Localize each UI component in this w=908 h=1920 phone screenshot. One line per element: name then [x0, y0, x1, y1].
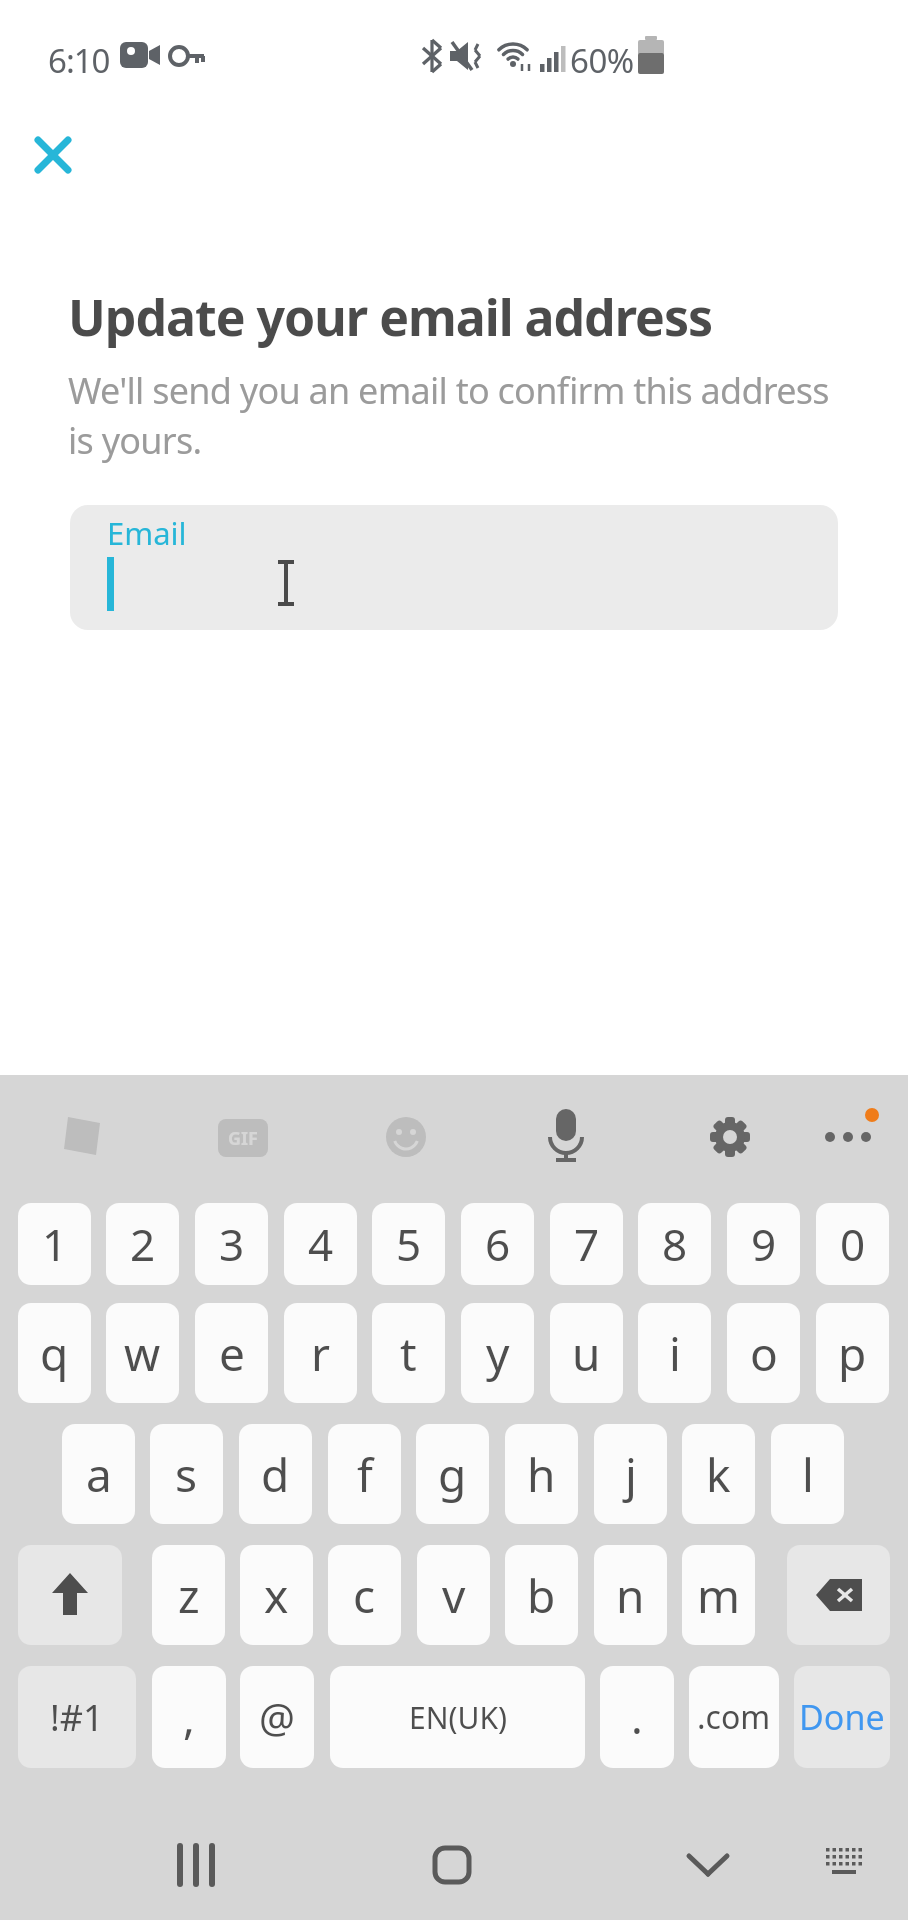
button[interactable]: d	[239, 1424, 312, 1524]
staticText: n	[616, 1564, 645, 1627]
button[interactable]: y	[461, 1303, 534, 1403]
staticText: h	[527, 1443, 556, 1506]
staticText: 4	[308, 1214, 334, 1274]
button[interactable]: 0	[816, 1203, 889, 1285]
button[interactable]: l	[771, 1424, 844, 1524]
staticText: j	[625, 1443, 637, 1506]
button[interactable]: c	[328, 1545, 401, 1645]
staticText: 8	[662, 1214, 688, 1274]
staticText: d	[261, 1443, 290, 1506]
staticText: q	[40, 1322, 69, 1385]
staticText: 1	[42, 1214, 68, 1274]
button[interactable]	[787, 1545, 890, 1645]
button[interactable]: i	[638, 1303, 711, 1403]
button[interactable]: h	[505, 1424, 578, 1524]
staticText: c	[353, 1564, 376, 1627]
button[interactable]	[22, 124, 84, 186]
button[interactable]: m	[682, 1545, 755, 1645]
button[interactable]: ,	[152, 1666, 226, 1768]
button[interactable]: Done	[794, 1666, 890, 1768]
button[interactable]: .	[600, 1666, 674, 1768]
staticText: Update your email address	[68, 283, 713, 351]
button[interactable]: t	[372, 1303, 445, 1403]
button[interactable]: w	[106, 1303, 179, 1403]
button[interactable]: b	[505, 1545, 578, 1645]
staticText: v	[442, 1564, 466, 1627]
button[interactable]	[812, 1831, 876, 1895]
button[interactable]: 2	[106, 1203, 179, 1285]
staticText: 6:10	[48, 38, 110, 83]
staticText: o	[750, 1322, 778, 1385]
staticText: k	[706, 1443, 731, 1506]
staticText: Done	[799, 1694, 885, 1740]
staticText: e	[219, 1322, 245, 1385]
button[interactable]: a	[62, 1424, 135, 1524]
staticText: 6	[485, 1214, 511, 1274]
button[interactable]: s	[150, 1424, 223, 1524]
button[interactable]: 3	[195, 1203, 268, 1285]
staticText: t	[400, 1322, 417, 1385]
staticText: 5	[396, 1214, 422, 1274]
staticText: Email	[107, 512, 187, 554]
staticText: 3	[219, 1214, 245, 1274]
button[interactable]: 1	[18, 1203, 91, 1285]
staticText: r	[311, 1322, 330, 1385]
staticText: We'll send you an email to confirm this …	[68, 366, 829, 465]
button[interactable]: j	[594, 1424, 667, 1524]
button[interactable]: v	[417, 1545, 490, 1645]
staticText: EN(UK)	[409, 1697, 507, 1738]
button[interactable]: k	[682, 1424, 755, 1524]
button[interactable]: g	[416, 1424, 489, 1524]
button[interactable]	[672, 1829, 744, 1901]
staticText: ,	[183, 1687, 195, 1747]
staticText: 2	[130, 1214, 156, 1274]
staticText: m	[697, 1564, 741, 1627]
staticText: 9	[751, 1214, 777, 1274]
button[interactable]: f	[328, 1424, 401, 1524]
staticText: i	[669, 1322, 681, 1385]
button[interactable]	[160, 1829, 232, 1901]
button[interactable]: !#1	[18, 1666, 136, 1768]
staticText: .com	[697, 1695, 771, 1739]
staticText: s	[175, 1443, 198, 1506]
button[interactable]: r	[284, 1303, 357, 1403]
staticText: b	[527, 1564, 556, 1627]
staticText: f	[357, 1443, 373, 1506]
button[interactable]: 8	[638, 1203, 711, 1285]
staticText: w	[124, 1322, 161, 1385]
button[interactable]: o	[727, 1303, 800, 1403]
staticText: 7	[574, 1214, 600, 1274]
button[interactable]: 9	[727, 1203, 800, 1285]
button[interactable]: EN(UK)	[330, 1666, 585, 1768]
button[interactable]: .com	[689, 1666, 779, 1768]
button[interactable]: z	[152, 1545, 225, 1645]
button[interactable]: q	[18, 1303, 91, 1403]
staticText: g	[438, 1443, 467, 1506]
staticText: 60%	[570, 38, 634, 83]
button[interactable]: e	[195, 1303, 268, 1403]
staticText: GIF	[228, 1126, 258, 1151]
button[interactable]: Email	[70, 505, 838, 630]
staticText: @	[259, 1690, 295, 1744]
staticText: x	[264, 1564, 289, 1627]
button[interactable]: u	[550, 1303, 623, 1403]
button[interactable]: x	[240, 1545, 313, 1645]
staticText: y	[486, 1322, 510, 1385]
button[interactable]: n	[594, 1545, 667, 1645]
staticText: u	[572, 1322, 601, 1385]
staticText: a	[86, 1443, 112, 1506]
staticText: .	[631, 1687, 643, 1747]
staticText: 0	[840, 1214, 866, 1274]
staticText: l	[802, 1443, 814, 1506]
staticText: p	[838, 1322, 867, 1385]
button[interactable]: 4	[284, 1203, 357, 1285]
button[interactable]	[416, 1829, 488, 1901]
button[interactable]: 5	[372, 1203, 445, 1285]
staticText: !#1	[50, 1693, 104, 1742]
button[interactable]: p	[816, 1303, 889, 1403]
staticText: z	[178, 1564, 200, 1627]
button[interactable]: @	[240, 1666, 314, 1768]
button[interactable]	[18, 1545, 122, 1645]
button[interactable]: 6	[461, 1203, 534, 1285]
button[interactable]: 7	[550, 1203, 623, 1285]
